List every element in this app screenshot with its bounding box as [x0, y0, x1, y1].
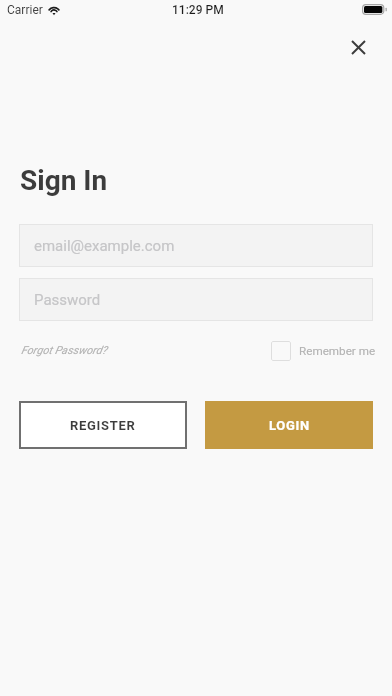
staticText: Forgot Password? — [21, 344, 107, 357]
button[interactable]: Close — [340, 29, 377, 66]
staticText: email@example.com — [34, 237, 175, 255]
button[interactable]: Forgot Password? — [21, 344, 107, 357]
button[interactable]: REGISTER — [19, 401, 187, 449]
staticText: Password — [34, 291, 101, 309]
button[interactable]: Remember me — [271, 341, 376, 361]
staticText: REGISTER — [70, 418, 136, 433]
button[interactable]: Password — [19, 278, 373, 321]
staticText: LOGIN — [269, 418, 310, 433]
button[interactable]: LOGIN — [205, 401, 373, 449]
button[interactable]: email@example.com — [19, 224, 373, 267]
staticText: Carrier — [7, 3, 43, 17]
staticText: Remember me — [299, 344, 376, 358]
other: Battery full — [362, 4, 387, 15]
staticText: 11:29 PM — [172, 3, 224, 17]
other: Wi-Fi signal — [47, 3, 61, 14]
staticText: Sign In — [20, 164, 108, 197]
